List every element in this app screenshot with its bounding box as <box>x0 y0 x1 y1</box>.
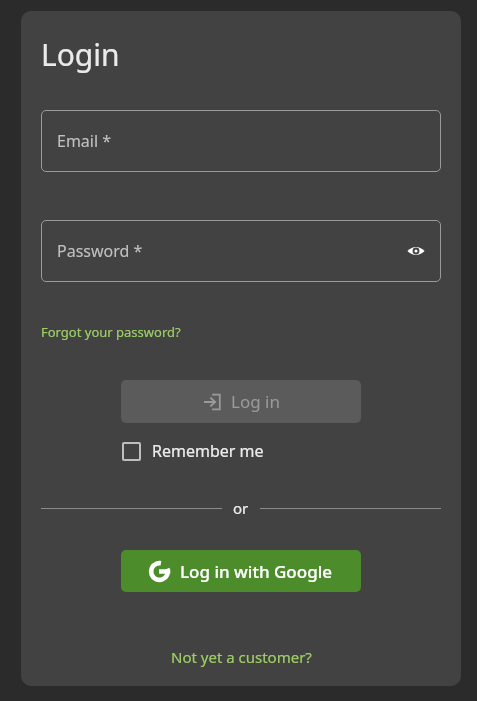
staticText: Login <box>41 34 120 75</box>
staticText: or <box>233 498 249 518</box>
staticText: Password * <box>57 240 143 262</box>
button[interactable]: Log in with Google <box>121 550 361 592</box>
button[interactable]: Forgot your password? <box>39 320 183 344</box>
staticText: Log in <box>231 390 280 413</box>
staticText: Email * <box>57 130 112 152</box>
button[interactable]: Remember me <box>120 435 266 467</box>
button[interactable]: Not yet a customer? <box>167 644 316 670</box>
staticText: Log in with Google <box>180 560 333 583</box>
button[interactable]: Show password <box>403 238 429 264</box>
staticText: Not yet a customer? <box>171 647 312 667</box>
staticText: Forgot your password? <box>41 323 181 341</box>
button[interactable]: Password * <box>41 220 441 282</box>
button[interactable]: Log in <box>121 380 361 423</box>
staticText: Remember me <box>152 440 264 462</box>
button[interactable]: Email * <box>41 110 441 172</box>
